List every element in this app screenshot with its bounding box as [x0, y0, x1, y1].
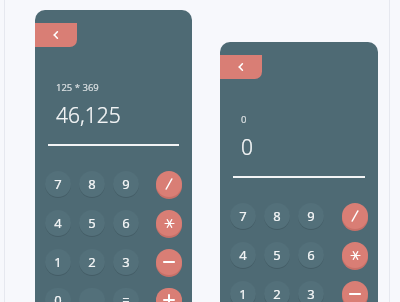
staticText: 6: [307, 246, 315, 264]
button[interactable]: 0: [45, 288, 71, 302]
staticText: 3: [307, 285, 315, 302]
staticText: 4: [239, 246, 247, 264]
staticText: 7: [239, 207, 247, 225]
staticText: 0: [54, 291, 62, 302]
staticText: 1: [239, 285, 247, 302]
staticText: 7: [54, 175, 62, 193]
button[interactable]: Back: [220, 55, 262, 79]
staticText: 8: [88, 175, 96, 193]
staticText: 0: [241, 113, 247, 126]
staticText: 8: [273, 207, 281, 225]
staticText: 9: [307, 207, 315, 225]
button[interactable]: 7: [45, 171, 71, 197]
button[interactable]: 2: [264, 281, 290, 302]
button[interactable]: plus: [156, 288, 182, 302]
staticText: 6: [122, 214, 130, 232]
staticText: 0: [241, 133, 253, 162]
button[interactable]: 4: [230, 242, 256, 268]
button[interactable]: 9: [298, 203, 324, 229]
staticText: 2: [273, 285, 281, 302]
button[interactable]: =: [113, 288, 139, 302]
button[interactable]: multiply: [342, 242, 368, 268]
button[interactable]: multiply: [156, 210, 182, 236]
button[interactable]: minus: [156, 249, 182, 275]
button[interactable]: 1: [45, 249, 71, 275]
button[interactable]: 6: [113, 210, 139, 236]
button[interactable]: minus: [342, 281, 368, 302]
staticText: 9: [122, 175, 130, 193]
button[interactable]: 1: [230, 281, 256, 302]
staticText: 1: [54, 253, 62, 271]
button[interactable]: 4: [45, 210, 71, 236]
button[interactable]: divide: [342, 203, 368, 229]
staticText: 4: [54, 214, 62, 232]
button[interactable]: 2: [79, 249, 105, 275]
staticText: 5: [273, 246, 281, 264]
button[interactable]: Back: [35, 23, 77, 47]
staticText: 125 * 369: [56, 81, 99, 94]
button[interactable]: 3: [298, 281, 324, 302]
staticText: =: [122, 291, 130, 302]
staticText: 46,125: [56, 101, 121, 130]
staticText: 2: [88, 253, 96, 271]
button[interactable]: 5: [264, 242, 290, 268]
button[interactable]: 5: [79, 210, 105, 236]
staticText: 5: [88, 214, 96, 232]
button[interactable]: 8: [264, 203, 290, 229]
button[interactable]: 3: [113, 249, 139, 275]
button[interactable]: divide: [156, 171, 182, 197]
staticText: 3: [122, 253, 130, 271]
button[interactable]: 9: [113, 171, 139, 197]
button[interactable]: 8: [79, 171, 105, 197]
button[interactable]: 7: [230, 203, 256, 229]
button[interactable]: 6: [298, 242, 324, 268]
